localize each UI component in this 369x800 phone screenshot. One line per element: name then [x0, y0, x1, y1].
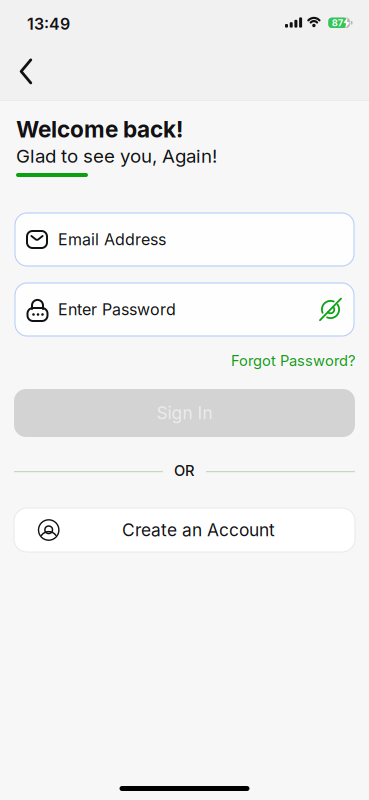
staticText: Sign In: [156, 403, 212, 423]
staticText: Welcome back!: [16, 116, 183, 143]
staticText: Forgot Password?: [231, 352, 355, 369]
button[interactable]: Enter Password: [15, 283, 354, 336]
staticText: OR: [174, 462, 195, 479]
staticText: 13:49: [27, 14, 70, 33]
button[interactable]: Create an Account: [14, 508, 355, 552]
staticText: Email Address: [58, 230, 166, 249]
staticText: Create an Account: [122, 520, 275, 540]
button[interactable]: Sign In: [14, 389, 355, 437]
button[interactable]: Forgot Password?: [0, 352, 355, 369]
button[interactable]: [4, 49, 48, 93]
button[interactable]: Email Address: [15, 213, 354, 266]
staticText: Enter Password: [58, 300, 176, 319]
staticText: Glad to see you, Again!: [16, 145, 217, 167]
staticText: 87: [332, 17, 343, 28]
